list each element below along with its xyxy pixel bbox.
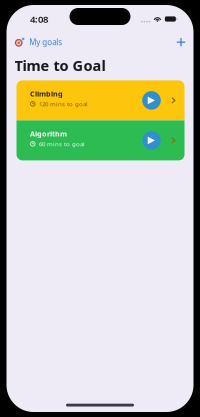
staticText: Climbing — [30, 89, 63, 99]
staticText: Algorithm — [30, 129, 67, 139]
button[interactable]: Add goal — [172, 35, 189, 50]
button[interactable]: Climbing — [16, 80, 184, 120]
staticText: 120 mins to goal — [39, 100, 88, 108]
staticText: My goals — [29, 37, 62, 48]
staticText: 4:08 — [30, 12, 48, 26]
staticText: Time to Goal — [14, 55, 105, 75]
staticText: 60 mins to goal — [39, 140, 85, 148]
button[interactable]: Algorithm — [16, 120, 184, 160]
button[interactable]: My goals — [6, 34, 62, 51]
